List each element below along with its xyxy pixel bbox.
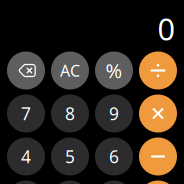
button[interactable]: 9: [95, 94, 133, 132]
button[interactable]: 2: [51, 180, 89, 184]
staticText: 4: [21, 145, 31, 168]
button[interactable]: Subtract: [139, 137, 177, 175]
staticText: 7: [21, 102, 31, 125]
staticText: 9: [109, 102, 119, 125]
button[interactable]: %: [95, 51, 133, 89]
button[interactable]: 1: [7, 180, 45, 184]
staticText: 8: [65, 102, 75, 125]
button[interactable]: 8: [51, 94, 89, 132]
staticText: 5: [65, 145, 75, 168]
button[interactable]: 4: [7, 137, 45, 175]
staticText: 6: [109, 145, 119, 168]
staticText: AC: [60, 60, 80, 81]
staticText: %: [105, 57, 122, 84]
staticText: 0: [157, 8, 175, 49]
button[interactable]: Delete: [7, 51, 45, 89]
button[interactable]: Divide: [139, 51, 177, 89]
button[interactable]: 7: [7, 94, 45, 132]
button[interactable]: Multiply: [139, 94, 177, 132]
button[interactable]: 5: [51, 137, 89, 175]
button[interactable]: 3: [95, 180, 133, 184]
button[interactable]: 6: [95, 137, 133, 175]
button[interactable]: Add: [139, 180, 177, 184]
button[interactable]: AC: [51, 51, 89, 89]
